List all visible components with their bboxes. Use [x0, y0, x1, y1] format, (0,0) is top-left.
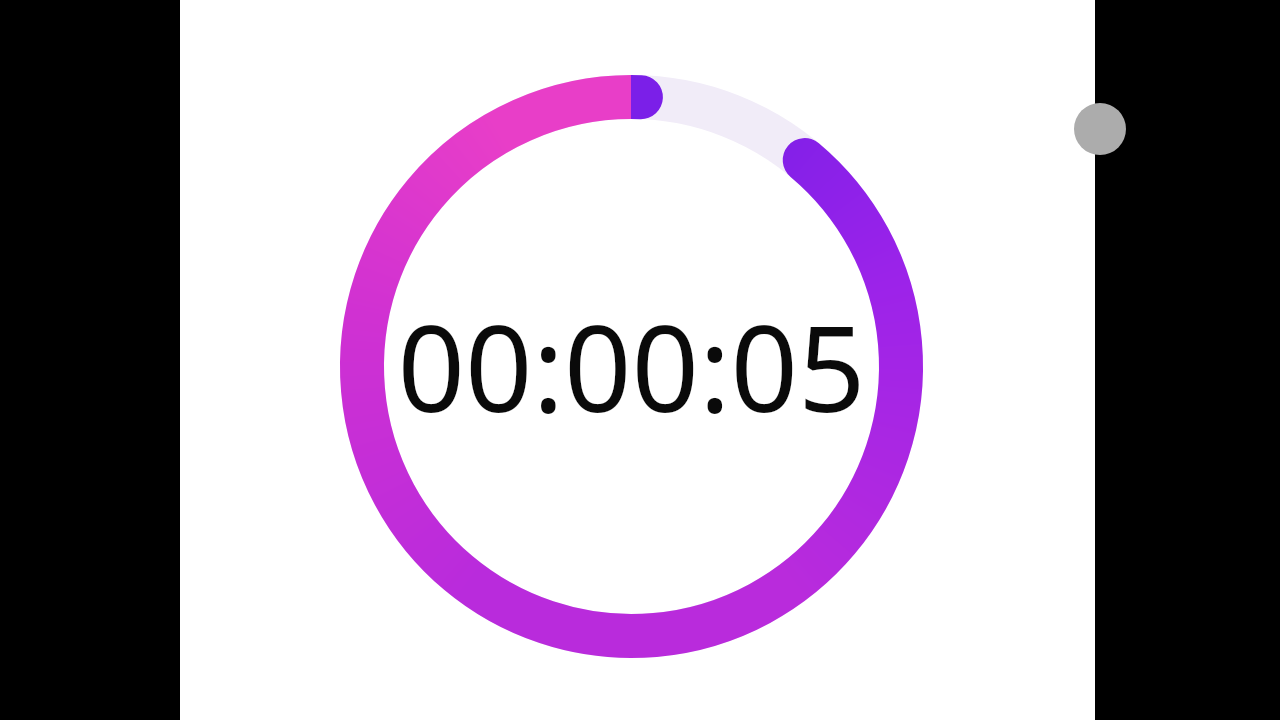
button[interactable]: More options	[1074, 103, 1126, 155]
button[interactable]: 00:00:05	[340, 75, 923, 658]
staticText: 00:00:05	[397, 286, 866, 447]
